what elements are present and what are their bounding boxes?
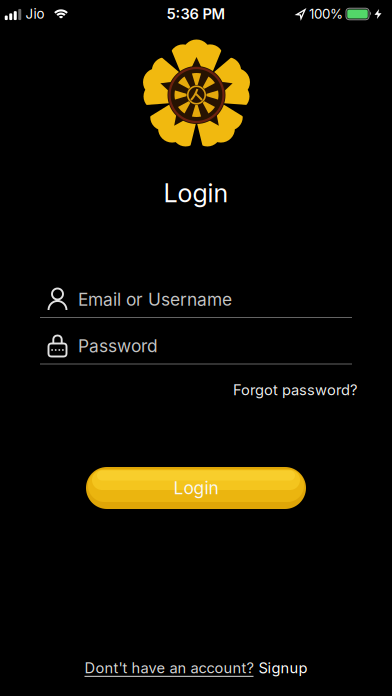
staticText: Password	[78, 336, 158, 356]
button[interactable]: Login	[86, 467, 306, 509]
button[interactable]: Dont't have an account?	[84, 659, 307, 677]
staticText: Signup	[258, 659, 307, 677]
staticText: 100%	[309, 6, 343, 22]
staticText: Dont't have an account?	[84, 659, 253, 677]
staticText: 5:36 PM	[166, 5, 225, 23]
staticText: Email or Username	[78, 289, 232, 310]
staticText: Login	[173, 478, 218, 498]
staticText: Jio	[25, 6, 44, 22]
button[interactable]: Forgot password?	[233, 381, 357, 399]
staticText: Forgot password?	[233, 381, 357, 399]
button[interactable]: Password	[40, 329, 352, 365]
button[interactable]: Email or Username	[40, 282, 352, 318]
staticText: Login	[163, 178, 228, 208]
